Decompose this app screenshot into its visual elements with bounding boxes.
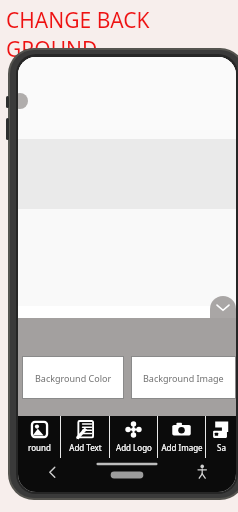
- staticText: CHANGE BACK GROUND: [6, 6, 238, 64]
- button[interactable]: Add Logo: [110, 416, 157, 458]
- button[interactable]: Background Color: [23, 357, 123, 398]
- button[interactable]: Add Image: [158, 416, 205, 458]
- staticText: Add Text: [69, 442, 102, 453]
- button[interactable]: Add Text: [61, 416, 109, 458]
- staticText: Add Logo: [116, 442, 152, 453]
- staticText: Sa: [217, 442, 226, 453]
- staticText: Background Image: [143, 372, 224, 384]
- staticText: Background Color: [35, 372, 112, 384]
- button[interactable]: Expand: [210, 296, 236, 318]
- staticText: Add Image: [161, 442, 203, 453]
- staticText: round: [28, 442, 51, 453]
- button[interactable]: Background Image: [132, 357, 235, 398]
- button[interactable]: round: [18, 416, 60, 458]
- button[interactable]: Sa: [206, 416, 236, 458]
